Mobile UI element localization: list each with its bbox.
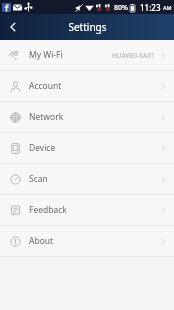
staticText: About <box>29 235 54 247</box>
staticText: HUAWEI-6A31 <box>112 51 155 60</box>
staticText: Network <box>29 111 64 123</box>
staticText: 11:23 <box>140 2 161 13</box>
button[interactable]: Account <box>0 71 174 101</box>
button[interactable]: About <box>0 226 174 256</box>
staticText: Settings <box>68 20 107 34</box>
staticText: My Wi-Fi <box>29 49 63 61</box>
button[interactable]: My Wi-Fi <box>0 40 174 70</box>
staticText: 80% <box>114 3 128 13</box>
staticText: AM <box>163 4 172 11</box>
staticText: Account <box>29 80 62 92</box>
button[interactable]: Back <box>0 14 26 40</box>
staticText: Feedback <box>29 204 67 216</box>
staticText: Device <box>29 142 56 154</box>
staticText: Scan <box>29 173 48 185</box>
button[interactable]: Network <box>0 102 174 132</box>
button[interactable]: Scan <box>0 164 174 194</box>
button[interactable]: Device <box>0 133 174 163</box>
button[interactable]: Feedback <box>0 195 174 225</box>
